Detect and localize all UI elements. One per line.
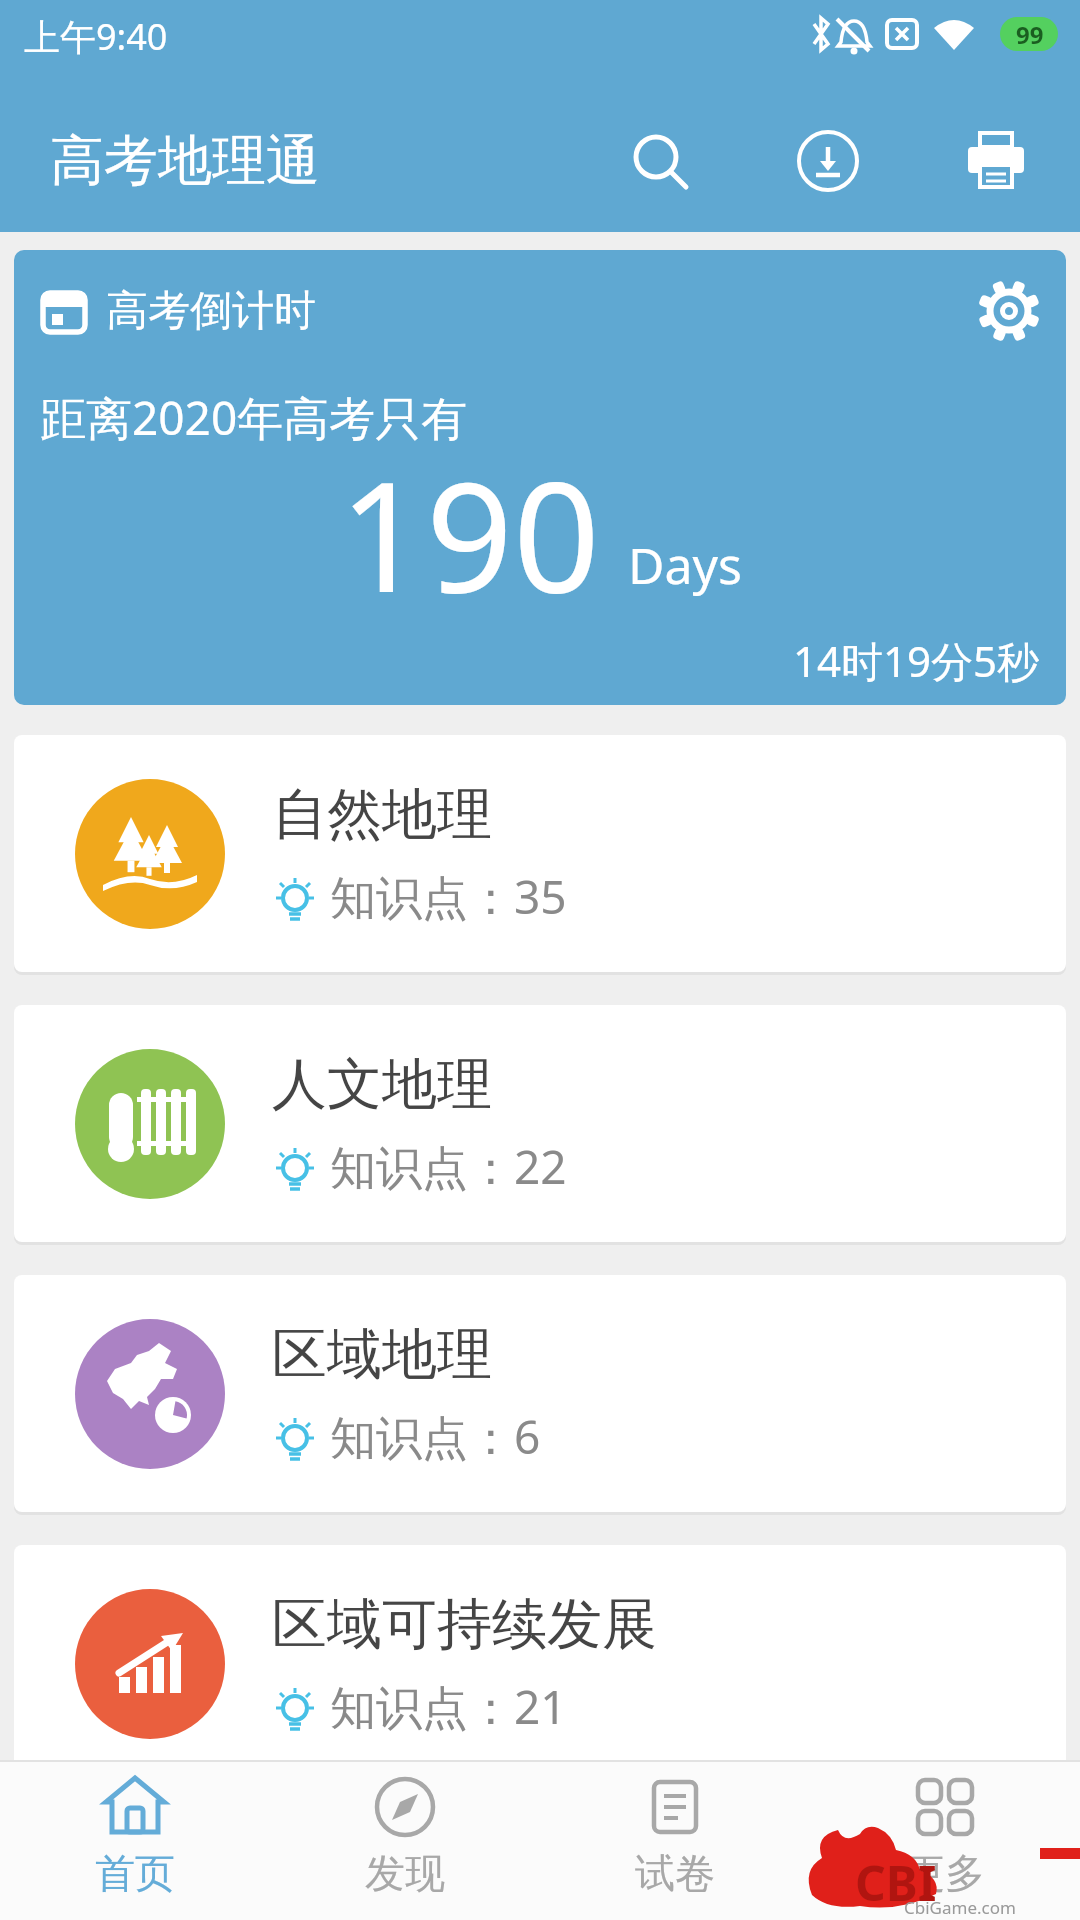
button[interactable]: 区域地理 (14, 1275, 1066, 1515)
button[interactable]: 高考倒计时 (14, 250, 1066, 705)
button[interactable]: 发现 (270, 1762, 540, 1920)
button[interactable] (784, 117, 872, 205)
staticText: 试卷 (635, 1848, 715, 1898)
staticText: 190 (339, 430, 600, 637)
staticText: 上午9:40 (24, 12, 168, 61)
staticText: 知识点：6 (330, 1405, 541, 1468)
staticText: 首页 (95, 1848, 175, 1898)
staticText: 高考地理通 (50, 127, 320, 195)
button[interactable] (952, 117, 1040, 205)
button[interactable] (976, 278, 1042, 344)
staticText: Days (628, 531, 742, 599)
staticText: 知识点：21 (330, 1675, 567, 1738)
staticText: CBI (855, 1850, 937, 1915)
button[interactable]: 试卷 (540, 1762, 810, 1920)
staticText: 知识点：22 (330, 1135, 567, 1198)
button[interactable]: 更多 (810, 1762, 1080, 1920)
staticText: CbiGame.com (904, 1896, 1016, 1919)
staticText: 更多 (905, 1848, 985, 1898)
staticText: 高考倒计时 (106, 285, 316, 338)
staticText: 知识点：35 (330, 865, 567, 928)
button[interactable]: 区域可持续发展 (14, 1545, 1066, 1785)
staticText: 99 (1016, 18, 1044, 51)
staticText: 距离2020年高考只有 (40, 386, 468, 449)
staticText: 区域地理 (272, 1320, 492, 1389)
button[interactable]: 人文地理 (14, 1005, 1066, 1245)
staticText: 发现 (365, 1848, 445, 1898)
staticText: 区域可持续发展 (272, 1590, 657, 1659)
staticText: 自然地理 (272, 780, 492, 849)
staticText: 人文地理 (272, 1050, 492, 1119)
button[interactable]: 自然地理 (14, 735, 1066, 975)
button[interactable]: 首页 (0, 1762, 270, 1920)
button[interactable] (616, 117, 704, 205)
staticText: 14时19分5秒 (793, 632, 1040, 689)
